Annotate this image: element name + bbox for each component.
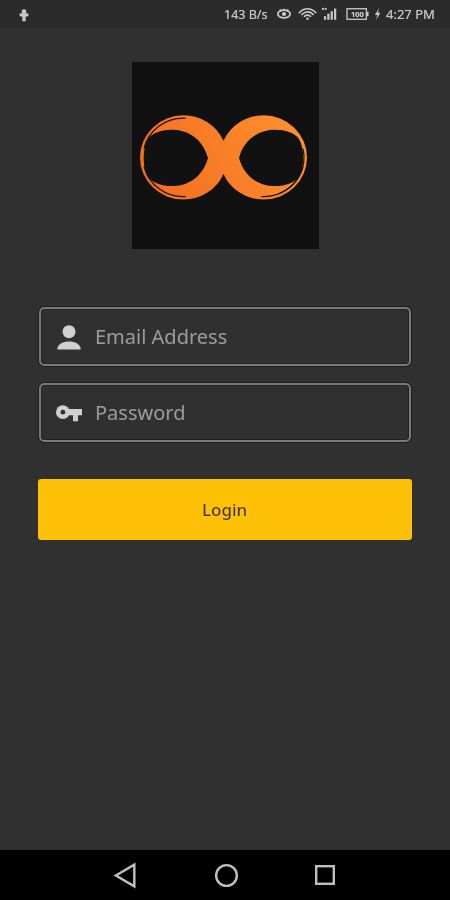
button[interactable]: Home <box>198 850 254 900</box>
button[interactable]: Password <box>41 385 409 440</box>
staticText: 4:27 PM <box>386 5 435 23</box>
staticText: Email Address <box>95 323 228 350</box>
staticText: 143 B/s <box>224 6 268 23</box>
staticText: 100 <box>351 9 364 19</box>
button[interactable]: Login <box>38 479 412 540</box>
staticText: Login <box>202 498 248 521</box>
staticText: Password <box>95 399 186 426</box>
button[interactable]: Email Address <box>41 309 409 364</box>
button[interactable]: Back <box>97 850 153 900</box>
button[interactable]: Recent apps <box>297 850 353 900</box>
